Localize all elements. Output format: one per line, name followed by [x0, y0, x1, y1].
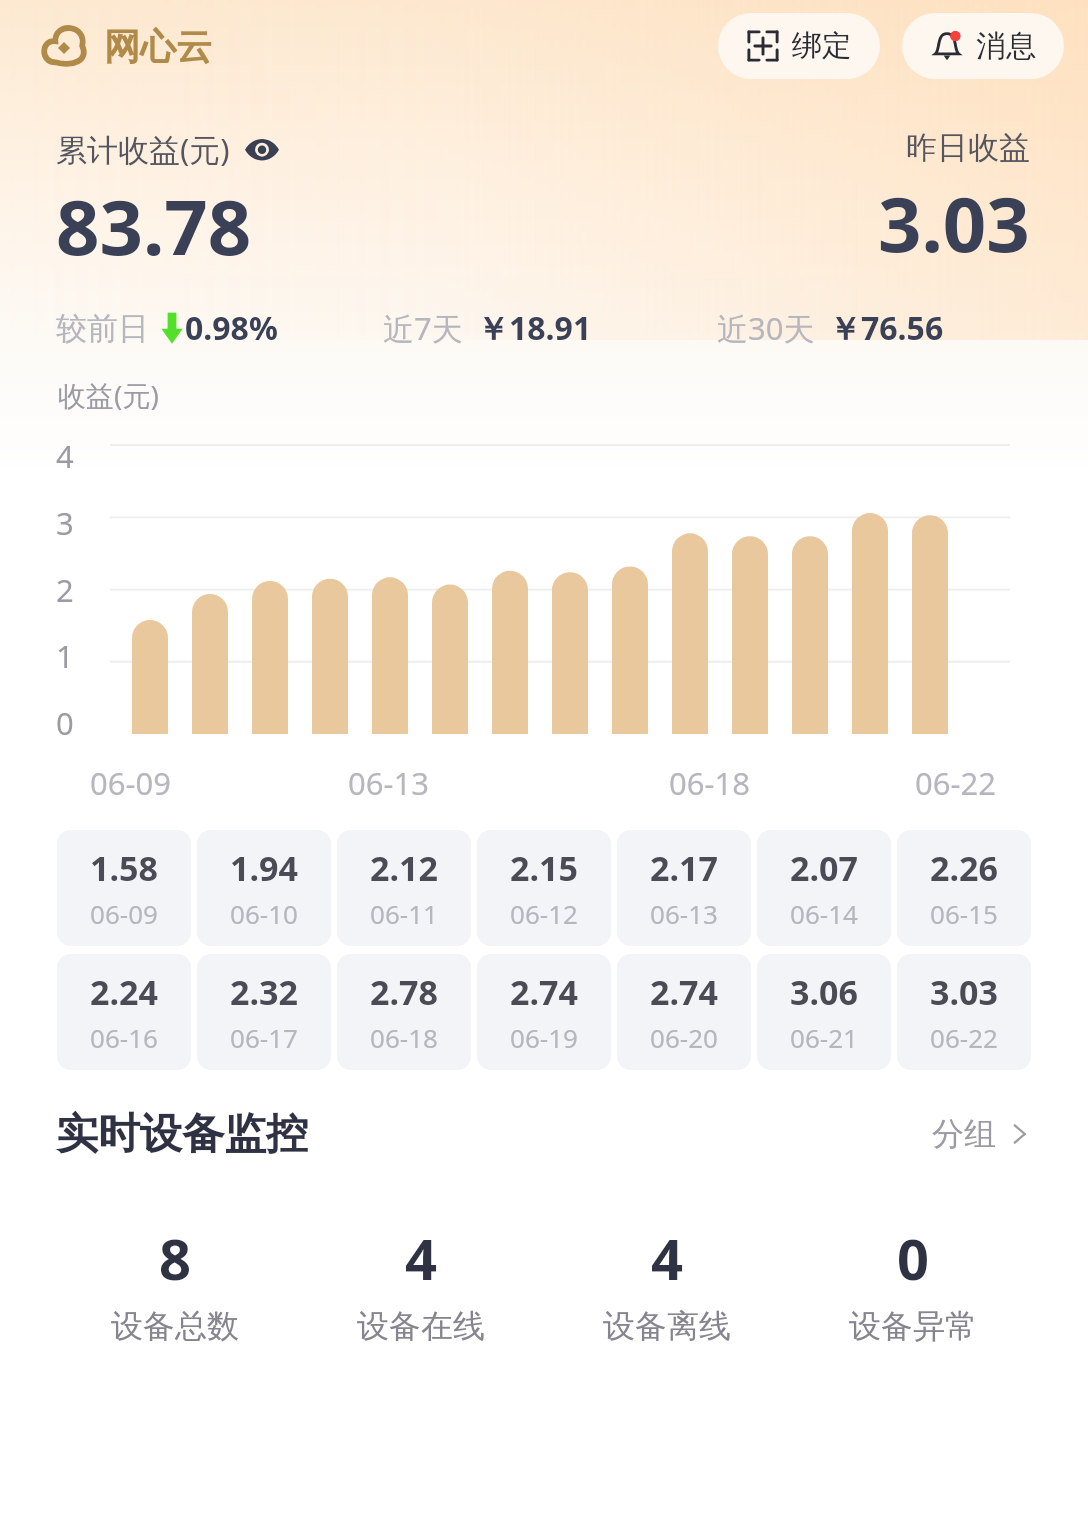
staticText: 2.12 [370, 845, 438, 891]
staticText: 较前日 [56, 309, 149, 348]
staticText: 累计收益(元) [56, 128, 230, 170]
staticText: 06-10 [230, 896, 298, 931]
staticText: 实时设备监控 [56, 1108, 308, 1161]
button[interactable]: 2.24 [57, 954, 191, 1070]
staticText: 2.17 [650, 845, 718, 891]
button[interactable]: 2.15 [477, 830, 611, 946]
staticText: 网心云 [104, 24, 212, 69]
staticText: 06-16 [90, 1020, 158, 1055]
staticText: 3 [56, 502, 74, 544]
staticText: 近7天 [383, 307, 463, 349]
staticText: 1 [56, 635, 74, 677]
other: 网心云 [40, 22, 88, 70]
staticText: 设备离线 [603, 1306, 731, 1346]
staticText: 收益(元) [58, 376, 159, 414]
staticText: 2.07 [790, 845, 858, 891]
staticText: 4 [56, 435, 74, 477]
button[interactable]: 8 [61, 1184, 289, 1382]
staticText: 06-13 [650, 896, 718, 931]
staticText: 昨日收益 [906, 128, 1030, 167]
staticText: 1.94 [230, 845, 298, 891]
staticText: 1.58 [90, 845, 158, 891]
staticText: 06-19 [510, 1020, 578, 1055]
button[interactable]: 2.32 [197, 954, 331, 1070]
button[interactable]: 1.94 [197, 830, 331, 946]
staticText: 3.03 [878, 171, 1030, 275]
button[interactable]: 3.06 [757, 954, 891, 1070]
staticText: 2.74 [650, 969, 718, 1015]
staticText: 2.78 [370, 969, 438, 1015]
staticText: 2.32 [230, 969, 298, 1015]
staticText: 0.98% [185, 306, 278, 350]
button[interactable]: 3.03 [897, 954, 1031, 1070]
staticText: ￥76.56 [829, 306, 944, 350]
button[interactable]: 0 [799, 1184, 1027, 1382]
button[interactable]: 2.12 [337, 830, 471, 946]
staticText: 0 [56, 702, 74, 744]
staticText: 2.24 [90, 969, 158, 1015]
staticText: 83.78 [56, 174, 252, 278]
button[interactable]: 2.74 [617, 954, 751, 1070]
staticText: 近30天 [717, 307, 815, 349]
staticText: 2.26 [930, 845, 998, 891]
button[interactable]: 分组 [926, 1106, 1038, 1162]
staticText: 06-18 [370, 1020, 438, 1055]
button[interactable]: 2.17 [617, 830, 751, 946]
staticText: 8 [159, 1220, 192, 1296]
button[interactable]: 4 [307, 1184, 535, 1382]
staticText: 0 [897, 1220, 930, 1296]
staticText: 设备总数 [111, 1306, 239, 1346]
staticText: 06-12 [510, 896, 578, 931]
staticText: 分组 [932, 1114, 996, 1154]
staticText: 06-15 [930, 896, 998, 931]
staticText: 3.06 [790, 969, 858, 1015]
button[interactable]: 1.58 [57, 830, 191, 946]
staticText: ￥18.91 [477, 306, 592, 350]
staticText: 06-21 [790, 1020, 858, 1055]
button[interactable]: 4 [553, 1184, 781, 1382]
button[interactable]: 绑定设备 [718, 13, 880, 79]
staticText: 06-22 [915, 762, 996, 804]
staticText: 2.15 [510, 845, 578, 891]
button[interactable]: 2.74 [477, 954, 611, 1070]
button[interactable]: 2.78 [337, 954, 471, 1070]
staticText: 消息 [976, 27, 1036, 65]
staticText: 绑定 [792, 27, 852, 65]
button[interactable]: 显示或隐藏收益 [244, 131, 280, 167]
staticText: 4 [405, 1220, 438, 1296]
staticText: 06-13 [348, 762, 429, 804]
staticText: 3.03 [930, 969, 998, 1015]
staticText: 设备异常 [849, 1306, 977, 1346]
staticText: 设备在线 [357, 1306, 485, 1346]
staticText: 06-22 [930, 1020, 998, 1055]
staticText: 4 [651, 1220, 684, 1296]
staticText: 06-09 [90, 762, 171, 804]
staticText: 06-20 [650, 1020, 718, 1055]
staticText: 06-17 [230, 1020, 298, 1055]
button[interactable]: 2.07 [757, 830, 891, 946]
staticText: 06-11 [370, 896, 438, 931]
staticText: 2 [56, 569, 74, 611]
staticText: 06-09 [90, 896, 158, 931]
button[interactable]: 消息 [902, 13, 1064, 79]
staticText: 2.74 [510, 969, 578, 1015]
button[interactable]: 2.26 [897, 830, 1031, 946]
staticText: 06-14 [790, 896, 858, 931]
staticText: 06-18 [669, 762, 750, 804]
